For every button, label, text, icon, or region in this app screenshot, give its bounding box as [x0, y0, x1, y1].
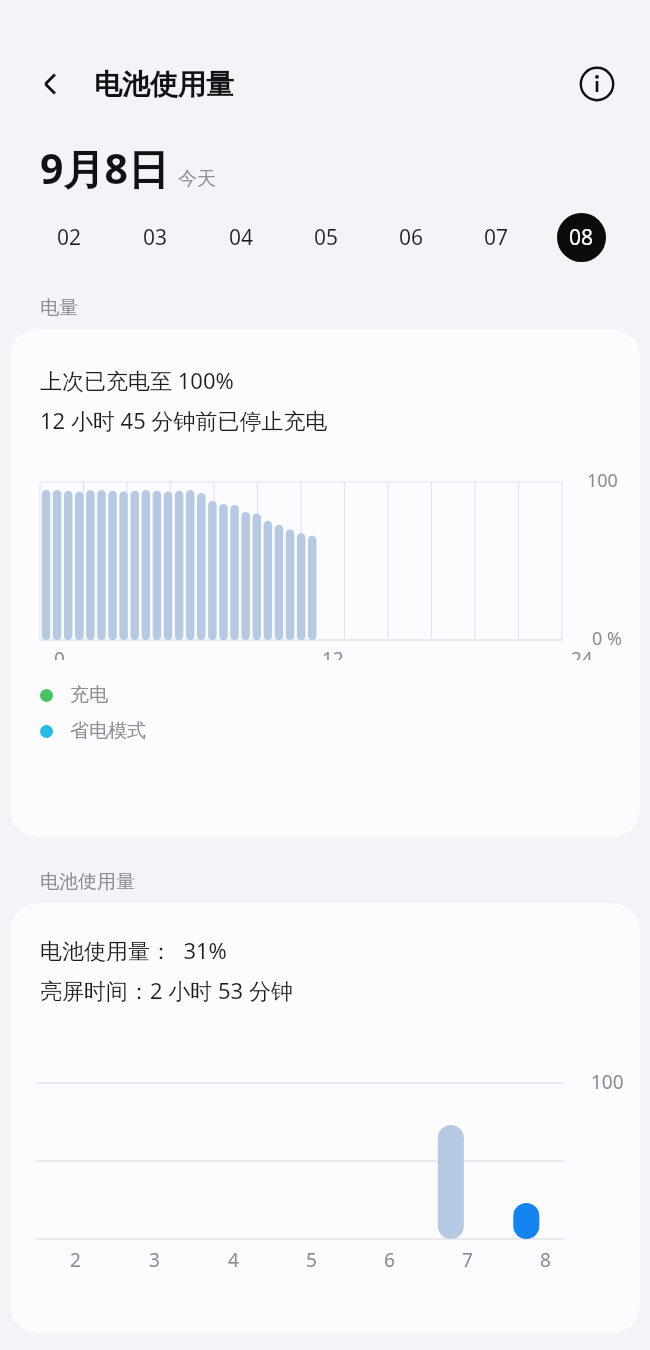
staticText: 上次已充电至 100% [40, 365, 234, 395]
staticText: 08 [569, 223, 594, 252]
staticText: 电池使用量 [94, 67, 234, 102]
staticText: 6 [384, 1247, 395, 1273]
staticText: 0 [54, 646, 65, 660]
staticText: 100 [587, 468, 618, 493]
staticText: 0 % [592, 626, 622, 651]
staticText: 电量 [40, 296, 78, 320]
staticText: 07 [484, 223, 509, 252]
button[interactable]: 08 [539, 208, 624, 266]
staticText: 充电 [70, 683, 108, 707]
staticText: 05 [314, 223, 339, 252]
button[interactable]: Back [26, 59, 76, 109]
button[interactable]: 上次已充电至 100% [10, 329, 640, 837]
staticText: 8 [540, 1247, 551, 1273]
staticText: 电池使用量： 31% [40, 935, 227, 965]
button[interactable]: 03 [112, 208, 198, 266]
staticText: 5 [306, 1247, 317, 1273]
button[interactable]: 电池使用量： 31% [10, 903, 640, 1333]
staticText: 03 [143, 223, 168, 252]
button[interactable]: 06 [369, 208, 454, 266]
staticText: 4 [228, 1247, 239, 1273]
button[interactable]: Information [572, 59, 622, 109]
staticText: 3 [149, 1247, 160, 1273]
staticText: 省电模式 [70, 719, 146, 743]
staticText: 9月8日 [40, 140, 169, 196]
staticText: 2 [70, 1247, 81, 1273]
button[interactable]: 04 [198, 208, 284, 266]
button[interactable]: 07 [454, 208, 539, 266]
staticText: 100 [591, 1069, 624, 1095]
button[interactable]: 05 [284, 208, 369, 266]
staticText: 7 [462, 1247, 473, 1273]
staticText: 电池使用量 [40, 870, 135, 894]
staticText: 02 [57, 223, 82, 252]
staticText: 12 [322, 646, 344, 660]
staticText: 亮屏时间：2 小时 53 分钟 [40, 975, 293, 1005]
staticText: 12 小时 45 分钟前已停止充电 [40, 405, 328, 435]
staticText: 今天 [178, 167, 216, 191]
staticText: 06 [399, 223, 424, 252]
staticText: 04 [229, 223, 254, 252]
button[interactable]: 02 [26, 208, 112, 266]
staticText: 24 [571, 646, 593, 660]
